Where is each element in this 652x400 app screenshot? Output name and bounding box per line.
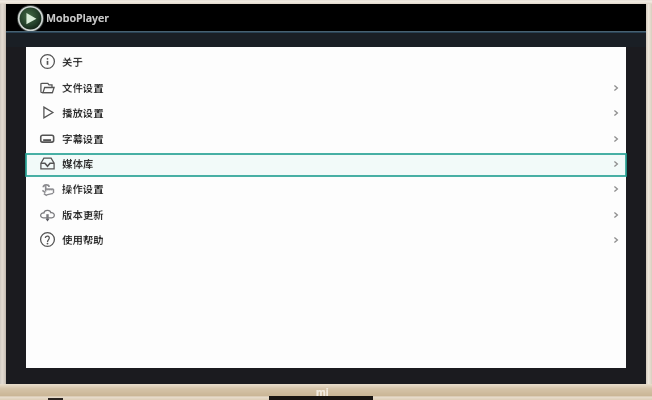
staticText: 字幕设置 [62, 131, 104, 146]
staticText: 版本更新 [62, 207, 104, 222]
button[interactable]: 文件设置 [26, 76, 626, 101]
staticText: 使用帮助 [62, 232, 104, 247]
button[interactable]: 使用帮助 [26, 228, 626, 253]
button[interactable]: 操作设置 [26, 177, 626, 202]
button[interactable]: 播放设置 [26, 101, 626, 126]
staticText: 文件设置 [62, 80, 104, 95]
button[interactable]: 字幕设置 [26, 127, 626, 152]
button[interactable]: 媒体库 [26, 152, 626, 177]
staticText: 媒体库 [62, 156, 94, 171]
button[interactable]: 版本更新 [26, 203, 626, 228]
staticText: 操作设置 [62, 181, 104, 196]
staticText: 播放设置 [62, 105, 104, 120]
button[interactable]: 关于 [26, 50, 626, 75]
staticText: 关于 [62, 54, 83, 69]
staticText: mi [316, 385, 329, 399]
staticText: MoboPlayer [46, 10, 110, 25]
